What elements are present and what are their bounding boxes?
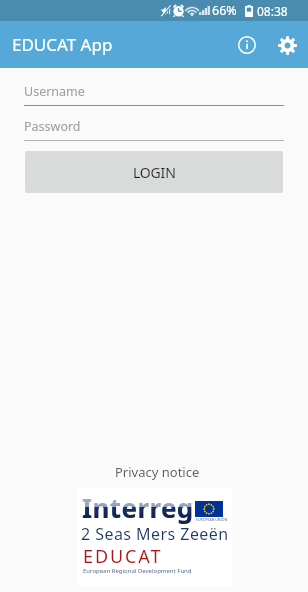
button[interactable]: Settings (267, 25, 307, 65)
staticText: Interreg (82, 490, 194, 525)
button[interactable]: Privacy notice (115, 463, 200, 481)
staticText: LOGIN (133, 163, 176, 182)
staticText: 2 Seas Mers Zeeën (81, 523, 229, 545)
button[interactable]: Password (24, 114, 284, 141)
button[interactable]: LOGIN (25, 151, 283, 193)
staticText: 66% (212, 2, 237, 19)
staticText: 08:38 (257, 3, 288, 19)
button[interactable]: Username (24, 79, 284, 106)
button[interactable]: Info (227, 25, 267, 65)
staticText: EUROPEAN UNION (196, 517, 228, 522)
staticText: EDUCAT (83, 544, 163, 569)
staticText: Password (24, 118, 81, 135)
staticText: Username (24, 83, 85, 100)
staticText: European Regional Development Fund (83, 567, 192, 575)
staticText: EDUCAT App (12, 33, 113, 56)
